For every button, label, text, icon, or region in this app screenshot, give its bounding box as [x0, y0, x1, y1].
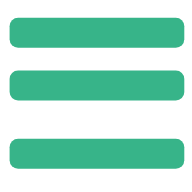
button[interactable]: Menu line one [10, 18, 185, 48]
button[interactable]: Menu line three [10, 139, 185, 169]
button[interactable]: Menu line two [10, 71, 185, 101]
